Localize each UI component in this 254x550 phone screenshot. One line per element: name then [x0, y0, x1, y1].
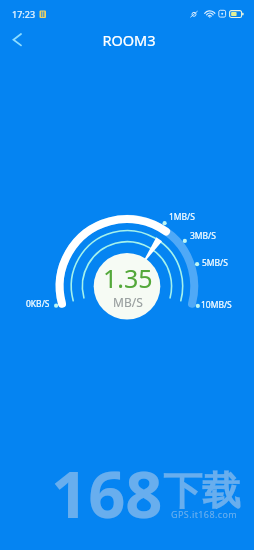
staticText: 3MB/S — [190, 230, 216, 242]
staticText: 0KB/S — [26, 298, 50, 310]
staticText: 1.35 — [103, 261, 153, 295]
staticText: ROOM3 — [2, 30, 254, 50]
staticText: 5MB/S — [202, 257, 228, 269]
staticText: 下载 — [163, 466, 241, 515]
staticText: GPS.it168.com — [171, 508, 238, 520]
staticText: 1MB/S — [169, 211, 195, 223]
staticText: 168 — [51, 449, 163, 538]
staticText: 17:23 — [12, 8, 36, 20]
staticText: MB/S — [113, 294, 143, 310]
button[interactable]: Back — [3, 25, 32, 54]
staticText: 10MB/S — [201, 299, 232, 311]
